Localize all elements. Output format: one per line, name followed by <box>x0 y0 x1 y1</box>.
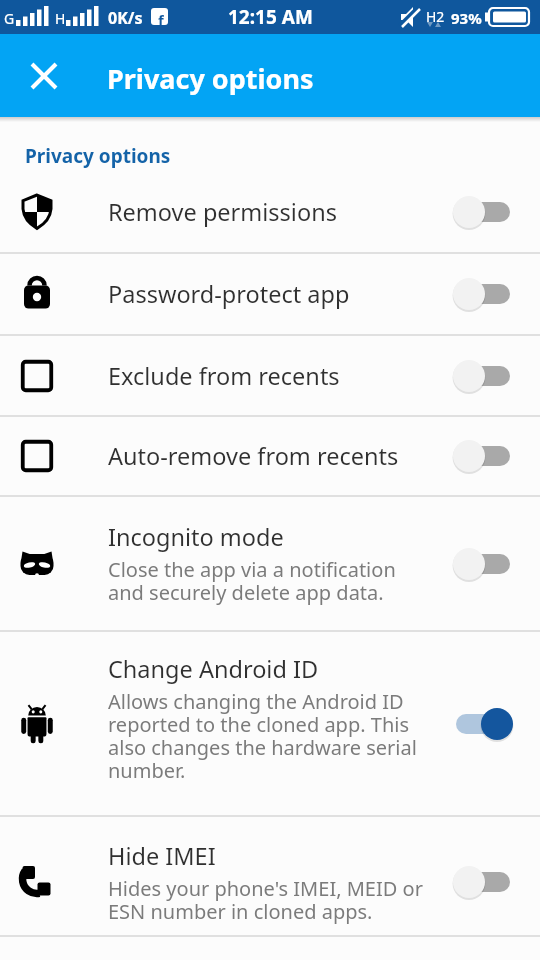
staticText: G <box>4 9 15 28</box>
staticText: Privacy options <box>107 60 314 97</box>
staticText: Privacy options <box>25 143 171 169</box>
button[interactable]: Hide IMEI <box>0 817 540 935</box>
button[interactable]: Password-protect app <box>0 254 540 334</box>
button[interactable]: Privacy options <box>0 34 540 117</box>
staticText: 0K/s <box>108 7 143 29</box>
button[interactable]: Auto-remove from recents <box>0 417 540 495</box>
staticText: H2 <box>426 7 445 26</box>
staticText: Exclude from recents <box>108 360 340 392</box>
staticText: Remove permissions <box>108 196 337 228</box>
staticText: H <box>55 9 66 28</box>
staticText: 93% <box>451 8 482 28</box>
button[interactable] <box>0 34 88 117</box>
staticText: Password-protect app <box>108 278 350 310</box>
staticText: 12:15 AM <box>228 4 313 30</box>
button[interactable]: Exclude from recents <box>0 336 540 415</box>
button[interactable]: Remove permissions <box>0 172 540 252</box>
staticText: Close the app via a notification and sec… <box>108 556 396 606</box>
staticText: f <box>158 10 164 25</box>
staticText: Allows changing the Android ID reported … <box>108 688 417 784</box>
staticText: Incognito mode <box>108 521 284 553</box>
button[interactable]: Change Android ID <box>0 632 540 815</box>
staticText: Hide IMEI <box>108 840 216 872</box>
staticText: Auto-remove from recents <box>108 440 399 472</box>
staticText: Hides your phone's IMEI, MEID or ESN num… <box>108 875 423 925</box>
staticText: Change Android ID <box>108 653 319 685</box>
button[interactable]: Incognito mode <box>0 497 540 630</box>
